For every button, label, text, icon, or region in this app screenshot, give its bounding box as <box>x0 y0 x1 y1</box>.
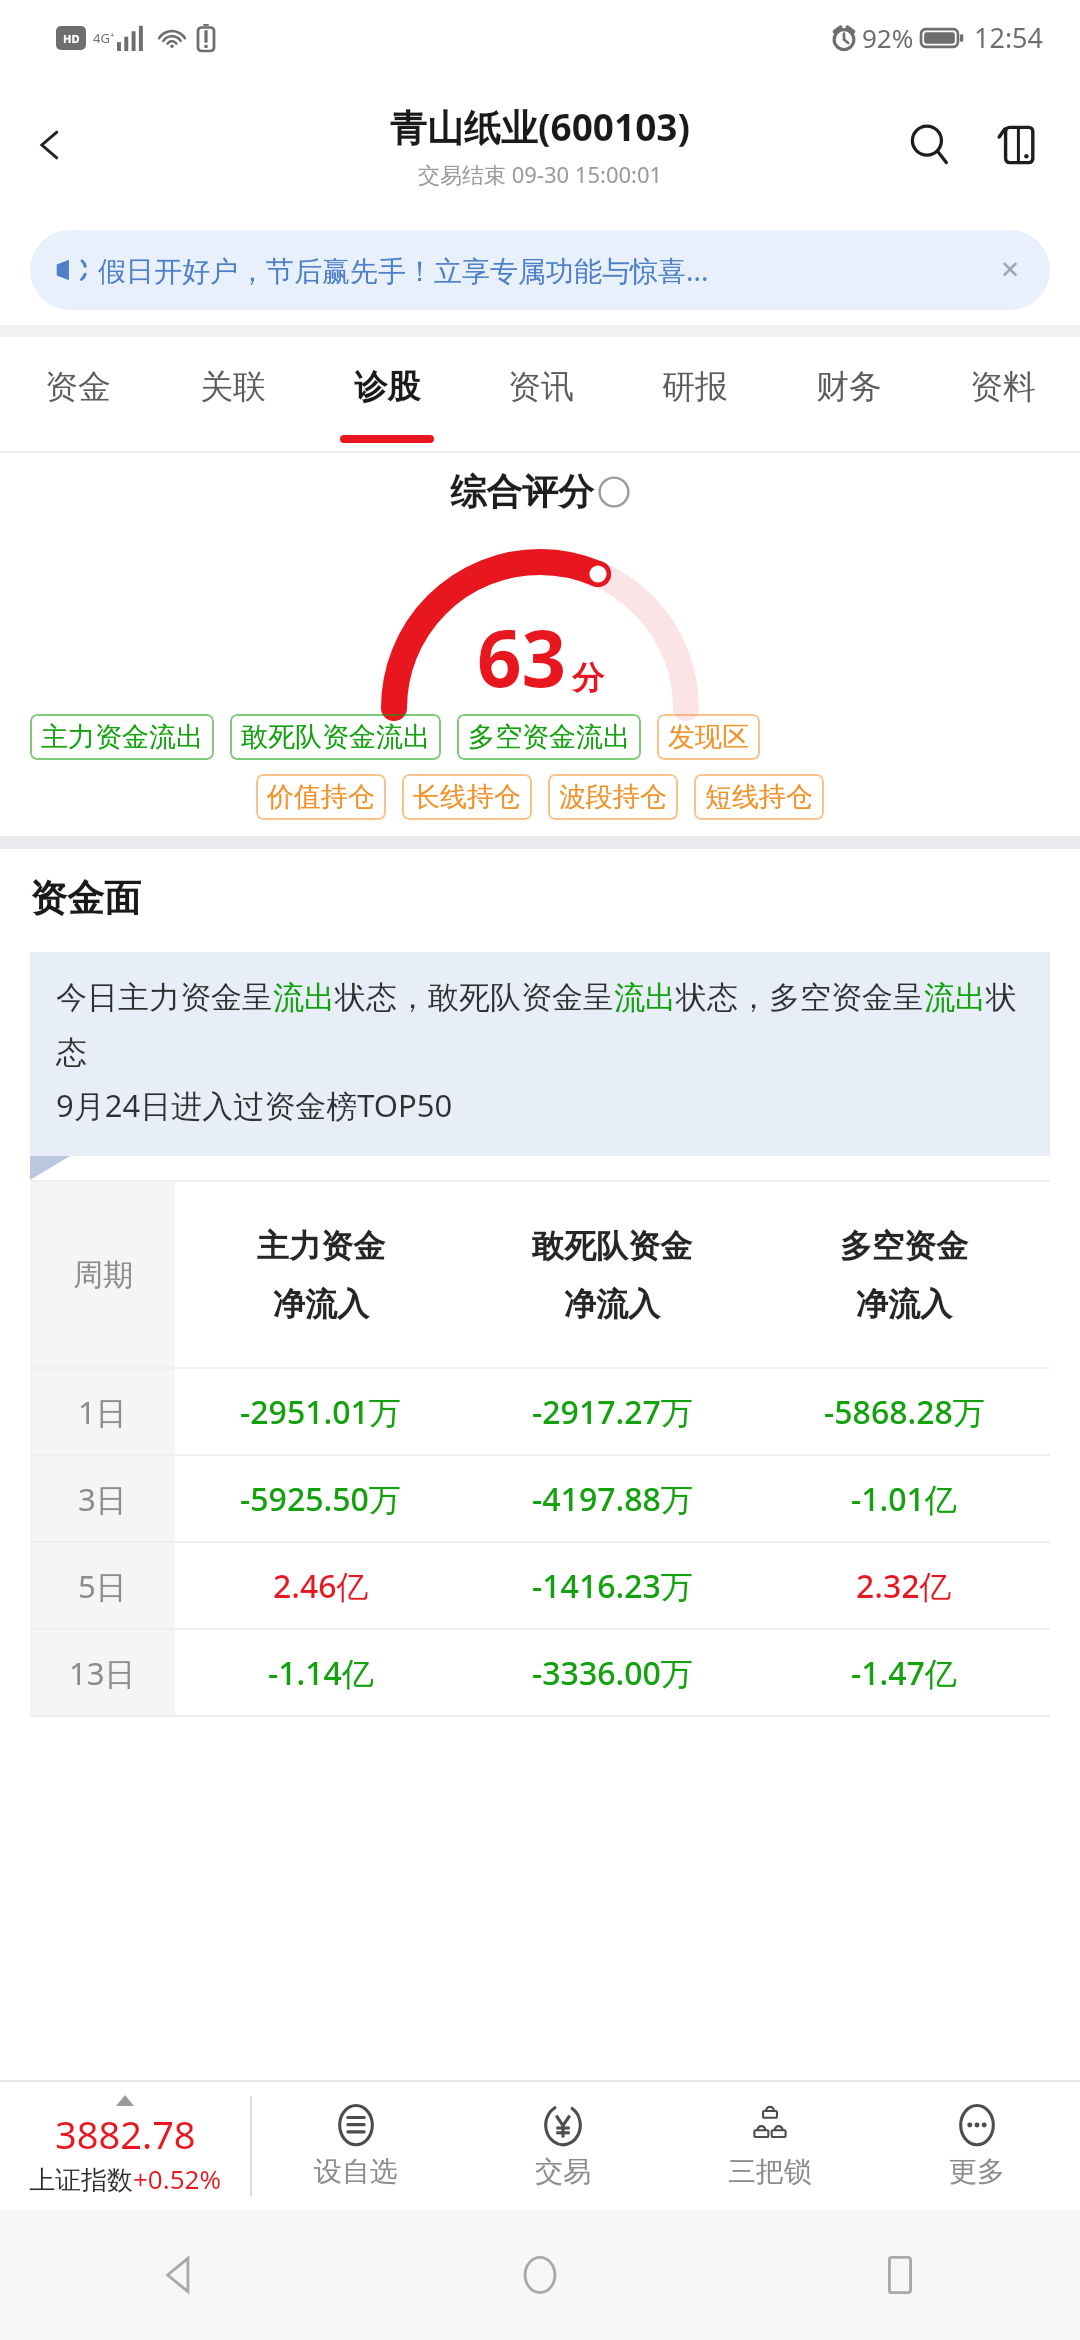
button[interactable]: 资金 <box>0 337 155 453</box>
staticText: 设自选 <box>314 2154 398 2189</box>
staticText: 92% <box>862 20 914 55</box>
staticText: 2.32亿 <box>856 1564 952 1608</box>
staticText: 净流入 <box>856 1284 952 1324</box>
button[interactable]: 1日 <box>30 1369 1050 1454</box>
staticText: 1日 <box>78 1391 127 1433</box>
button[interactable]: 主力资金流出 <box>30 714 214 760</box>
staticText: -1.47亿 <box>851 1651 957 1695</box>
staticText: 青山纸业(600103) <box>390 101 691 152</box>
staticText: 研报 <box>662 366 728 408</box>
staticText: -3336.00万 <box>532 1651 693 1695</box>
staticText: 多空资金流出 <box>468 720 630 754</box>
button[interactable]: 13日 <box>30 1630 1050 1715</box>
button[interactable]: More tools <box>974 103 1058 187</box>
staticText: -2951.01万 <box>240 1390 401 1434</box>
staticText: 4G⁺ <box>93 29 115 47</box>
button[interactable]: 综合评分 <box>450 469 630 514</box>
staticText: 更多 <box>949 2154 1005 2189</box>
staticText: 主力资金流出 <box>41 720 203 754</box>
staticText: 资金面 <box>30 875 141 922</box>
button[interactable]: 价值持仓 <box>256 774 386 820</box>
button[interactable]: 假日开好户，节后赢先手！立享专属功能与惊喜... <box>30 230 1050 310</box>
staticText: 综合评分 <box>450 469 594 514</box>
staticText: 价值持仓 <box>267 780 375 814</box>
staticText: 交易 <box>535 2154 591 2189</box>
button[interactable]: 诊股 <box>310 337 464 453</box>
staticText: -1416.23万 <box>532 1564 693 1608</box>
staticText: 波段持仓 <box>559 780 667 814</box>
staticText: -5868.28万 <box>824 1390 985 1434</box>
staticText: 多空资金 <box>840 1226 968 1266</box>
staticText: 12:54 <box>974 19 1044 56</box>
button[interactable]: 3882.78 <box>0 2082 250 2210</box>
staticText: -1.14亿 <box>268 1651 374 1695</box>
staticText: 周期 <box>73 1256 133 1294</box>
staticText: 3日 <box>78 1478 127 1520</box>
button[interactable]: 多空资金流出 <box>457 714 641 760</box>
staticText: 13日 <box>69 1652 136 1694</box>
button[interactable]: 短线持仓 <box>694 774 824 820</box>
button[interactable]: 3日 <box>30 1456 1050 1541</box>
staticText: 今日主力资金呈流出状态，敢死队资金呈流出状态，多空资金呈流出状态 <box>56 978 1024 1072</box>
staticText: 敢死队资金流出 <box>241 720 430 754</box>
staticText: 财务 <box>816 366 882 408</box>
button[interactable]: 关联 <box>155 337 310 453</box>
staticText: -5925.50万 <box>240 1477 401 1521</box>
button[interactable]: 资讯 <box>464 337 618 453</box>
staticText: ✕ <box>1000 256 1021 284</box>
button[interactable]: Search <box>886 101 974 189</box>
button[interactable]: 设自选 <box>252 2082 459 2210</box>
staticText: 交易结束 09-30 15:00:01 <box>418 159 663 189</box>
staticText: 主力资金 <box>257 1226 385 1266</box>
staticText: HD <box>63 31 80 46</box>
button[interactable]: 敢死队资金流出 <box>230 714 441 760</box>
button[interactable]: 三把锁 <box>666 2082 873 2210</box>
staticText: 净流入 <box>273 1284 369 1324</box>
staticText: 三把锁 <box>728 2154 812 2189</box>
staticText: 5日 <box>78 1565 127 1607</box>
button[interactable]: 交易 <box>459 2082 666 2210</box>
staticText: 上证指数+0.52% <box>29 2161 222 2197</box>
button[interactable]: 资料 <box>926 337 1080 453</box>
staticText: 长线持仓 <box>413 780 521 814</box>
staticText: -2917.27万 <box>532 1390 693 1434</box>
button[interactable]: 长线持仓 <box>402 774 532 820</box>
button[interactable]: 更多 <box>873 2082 1080 2210</box>
staticText: 9月24日进入过资金榜TOP50 <box>56 1084 453 1126</box>
staticText: 短线持仓 <box>705 780 813 814</box>
staticText: 假日开好户，节后赢先手！立享专属功能与惊喜... <box>98 251 978 289</box>
button[interactable]: 5日 <box>30 1543 1050 1628</box>
staticText: 3882.78 <box>55 2108 196 2160</box>
staticText: 诊股 <box>354 366 420 408</box>
staticText: 敢死队资金 <box>532 1226 692 1266</box>
button[interactable]: Close <box>988 248 1032 292</box>
staticText: -1.01亿 <box>851 1477 957 1521</box>
staticText: -4197.88万 <box>532 1477 693 1521</box>
button[interactable]: 财务 <box>772 337 926 453</box>
staticText: 关联 <box>200 366 266 408</box>
staticText: 分 <box>572 658 604 698</box>
staticText: 资料 <box>970 366 1036 408</box>
button[interactable]: Back <box>0 95 100 195</box>
staticText: 63 <box>477 604 567 710</box>
button[interactable]: 研报 <box>618 337 772 453</box>
staticText: 发现区 <box>668 720 749 754</box>
staticText: 资金 <box>45 366 111 408</box>
button[interactable]: 波段持仓 <box>548 774 678 820</box>
staticText: 净流入 <box>564 1284 660 1324</box>
button[interactable]: 发现区 <box>657 714 760 760</box>
staticText: 2.46亿 <box>273 1564 369 1608</box>
staticText: 资讯 <box>508 366 574 408</box>
